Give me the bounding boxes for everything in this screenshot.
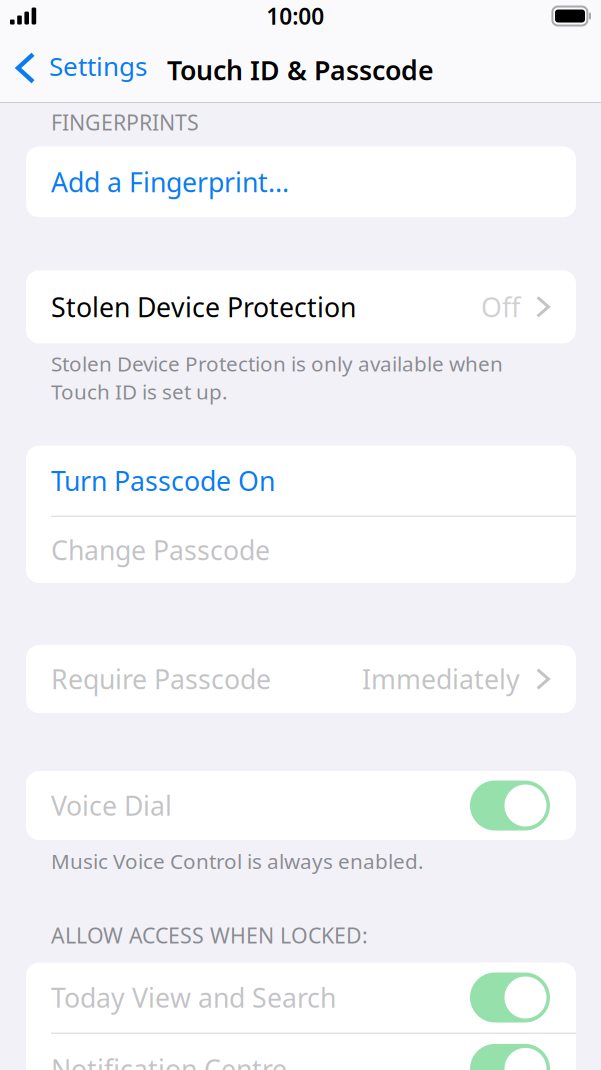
staticText: Notification Centre xyxy=(51,1051,287,1070)
button[interactable]: Stolen Device Protection xyxy=(26,270,576,343)
staticText: Stolen Device Protection xyxy=(51,289,356,324)
staticText: Settings xyxy=(49,48,147,84)
staticText: Stolen Device Protection is only availab… xyxy=(51,349,503,406)
button[interactable]: Today View and Search xyxy=(470,972,550,1022)
staticText: FINGERPRINTS xyxy=(51,108,199,136)
staticText: ALLOW ACCESS WHEN LOCKED: xyxy=(51,921,368,949)
button[interactable]: Turn Passcode On xyxy=(26,446,576,516)
staticText: Turn Passcode On xyxy=(51,463,275,498)
staticText: Music Voice Control is always enabled. xyxy=(51,847,424,875)
button[interactable]: Require Passcode xyxy=(26,645,576,713)
staticText: Require Passcode xyxy=(51,661,271,697)
button[interactable]: Add a Fingerprint... xyxy=(26,146,576,217)
staticText: Today View and Search xyxy=(51,980,336,1015)
button[interactable]: Notification Centre xyxy=(470,1044,550,1070)
staticText: Change Passcode xyxy=(51,532,270,568)
staticText: Add a Fingerprint... xyxy=(51,164,289,199)
staticText: Touch ID & Passcode xyxy=(167,52,434,88)
button[interactable]: Settings xyxy=(0,40,153,102)
staticText: Immediately xyxy=(362,661,520,697)
staticText: 10:00 xyxy=(266,1,324,31)
staticText: Off xyxy=(481,289,520,324)
staticText: Voice Dial xyxy=(51,788,172,823)
button[interactable]: Voice Dial xyxy=(470,780,550,830)
button[interactable]: Change Passcode xyxy=(26,517,576,583)
